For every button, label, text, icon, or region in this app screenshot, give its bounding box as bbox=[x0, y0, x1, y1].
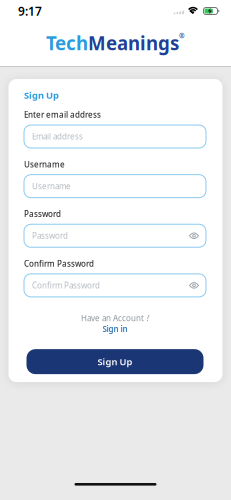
button[interactable]: Sign in bbox=[102, 323, 127, 334]
button[interactable]: Username bbox=[24, 175, 206, 198]
staticText: Tech bbox=[46, 31, 88, 55]
staticText: Enter email address bbox=[24, 109, 101, 120]
staticText: Have an Account ? bbox=[81, 313, 149, 323]
button[interactable]: Confirm Password bbox=[24, 274, 206, 297]
button[interactable]: Password bbox=[24, 224, 206, 247]
button[interactable]: Show password bbox=[189, 281, 199, 289]
staticText: 9:17 bbox=[18, 3, 42, 19]
staticText: Username bbox=[32, 181, 71, 191]
staticText: Email address bbox=[32, 131, 83, 142]
button[interactable]: Sign Up bbox=[26, 349, 203, 374]
staticText: Username bbox=[24, 159, 65, 170]
staticText: Confirm Password bbox=[24, 258, 94, 269]
staticText: Sign in bbox=[102, 323, 127, 334]
staticText: Password bbox=[32, 230, 68, 241]
staticText: Sign Up bbox=[24, 89, 59, 101]
button[interactable]: Email address bbox=[24, 125, 206, 148]
staticText: Confirm Password bbox=[32, 280, 100, 291]
staticText: Password bbox=[24, 209, 61, 219]
staticText: Sign Up bbox=[97, 355, 132, 368]
button[interactable]: Show password bbox=[189, 232, 199, 240]
staticText: ® bbox=[179, 32, 185, 40]
staticText: Meanings bbox=[88, 31, 179, 55]
